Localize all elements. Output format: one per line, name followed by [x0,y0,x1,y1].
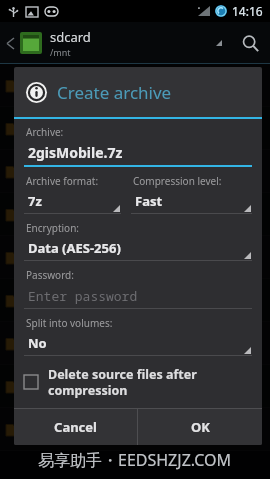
button[interactable]: No [24,331,252,356]
button[interactable]: Delete source files after compression [24,364,252,400]
button[interactable]: 7z [24,189,121,214]
staticText: 7z [28,192,42,210]
staticText: Enter password [28,287,138,305]
staticText: sdcard [50,28,91,46]
staticText: Split into volumes: [26,316,113,330]
staticText: Data (AES-256) [28,239,121,257]
button[interactable]: Data (AES-256) [24,236,252,261]
staticText: Compression level: [133,174,222,188]
button[interactable]: Fast [131,189,252,214]
staticText: Create archive [57,81,172,104]
staticText: Encryption: [26,221,80,235]
staticText: No [28,334,47,352]
button[interactable]: More options [208,22,230,64]
staticText: Archive format: [26,174,99,188]
button[interactable]: OK [138,409,262,445]
staticText: Cancel [54,418,97,436]
staticText: 易享助手・EEDSHZJZ.COM [38,449,232,471]
button[interactable]: Cancel [14,409,137,445]
staticText: 2gisMobile.7z [28,143,123,162]
button[interactable]: Search [230,22,270,64]
staticText: Archive: [26,125,64,139]
staticText: OK [191,418,210,436]
button[interactable]: Navigate up [0,22,20,64]
staticText: Fast [135,192,163,210]
staticText: Password: [26,268,74,282]
button[interactable]: Enter password [24,283,252,309]
button[interactable]: 2gisMobile.7z [24,140,252,167]
staticText: 14:16 [232,3,263,19]
staticText: /mnt [50,46,71,58]
staticText: Delete source files after compression [48,366,197,398]
